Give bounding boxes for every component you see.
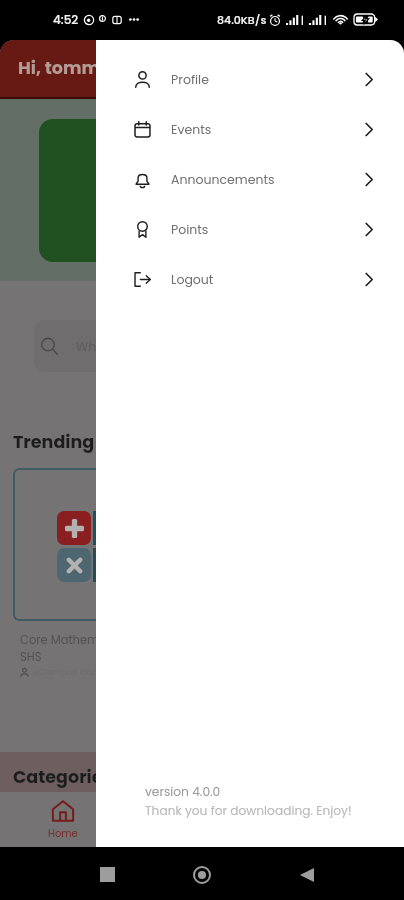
staticText: Profile: [171, 71, 209, 88]
button[interactable]: What do you want to learn?: [34, 320, 370, 372]
button[interactable]: Courses: [126, 796, 186, 844]
button[interactable]: Profile: [96, 54, 404, 104]
button[interactable]: Home: [33, 796, 93, 844]
staticText: Points: [171, 221, 209, 238]
button[interactable]: Library: [218, 796, 278, 844]
staticText: eCampus Ghana: [33, 666, 111, 679]
staticText: 4:52: [53, 11, 79, 28]
button[interactable]: Announcements: [96, 154, 404, 204]
staticText: Events: [171, 121, 212, 138]
staticText: Trending: [13, 430, 95, 455]
staticText: Thank you for downloading. Enjoy!: [145, 802, 352, 819]
staticText: version 4.0.0: [145, 783, 221, 800]
staticText: Logout: [171, 271, 214, 288]
staticText: Home: [48, 826, 78, 840]
staticText: Hi, tommy: [18, 56, 112, 81]
staticText: Core Mathematics: [20, 632, 127, 648]
staticText: What do you want to learn?: [76, 338, 248, 355]
staticText: SHS: [20, 649, 42, 665]
button[interactable]: Points: [96, 204, 404, 254]
staticText: Announcements: [171, 171, 275, 188]
button[interactable]: Events: [96, 104, 404, 154]
staticText: 84.0KB/s: [217, 12, 267, 27]
staticText: Categories: [13, 765, 113, 790]
other: Home: [193, 866, 211, 884]
button[interactable]: Logout: [96, 254, 404, 304]
button[interactable]: Profile: [311, 796, 371, 844]
other: Back: [300, 868, 314, 882]
